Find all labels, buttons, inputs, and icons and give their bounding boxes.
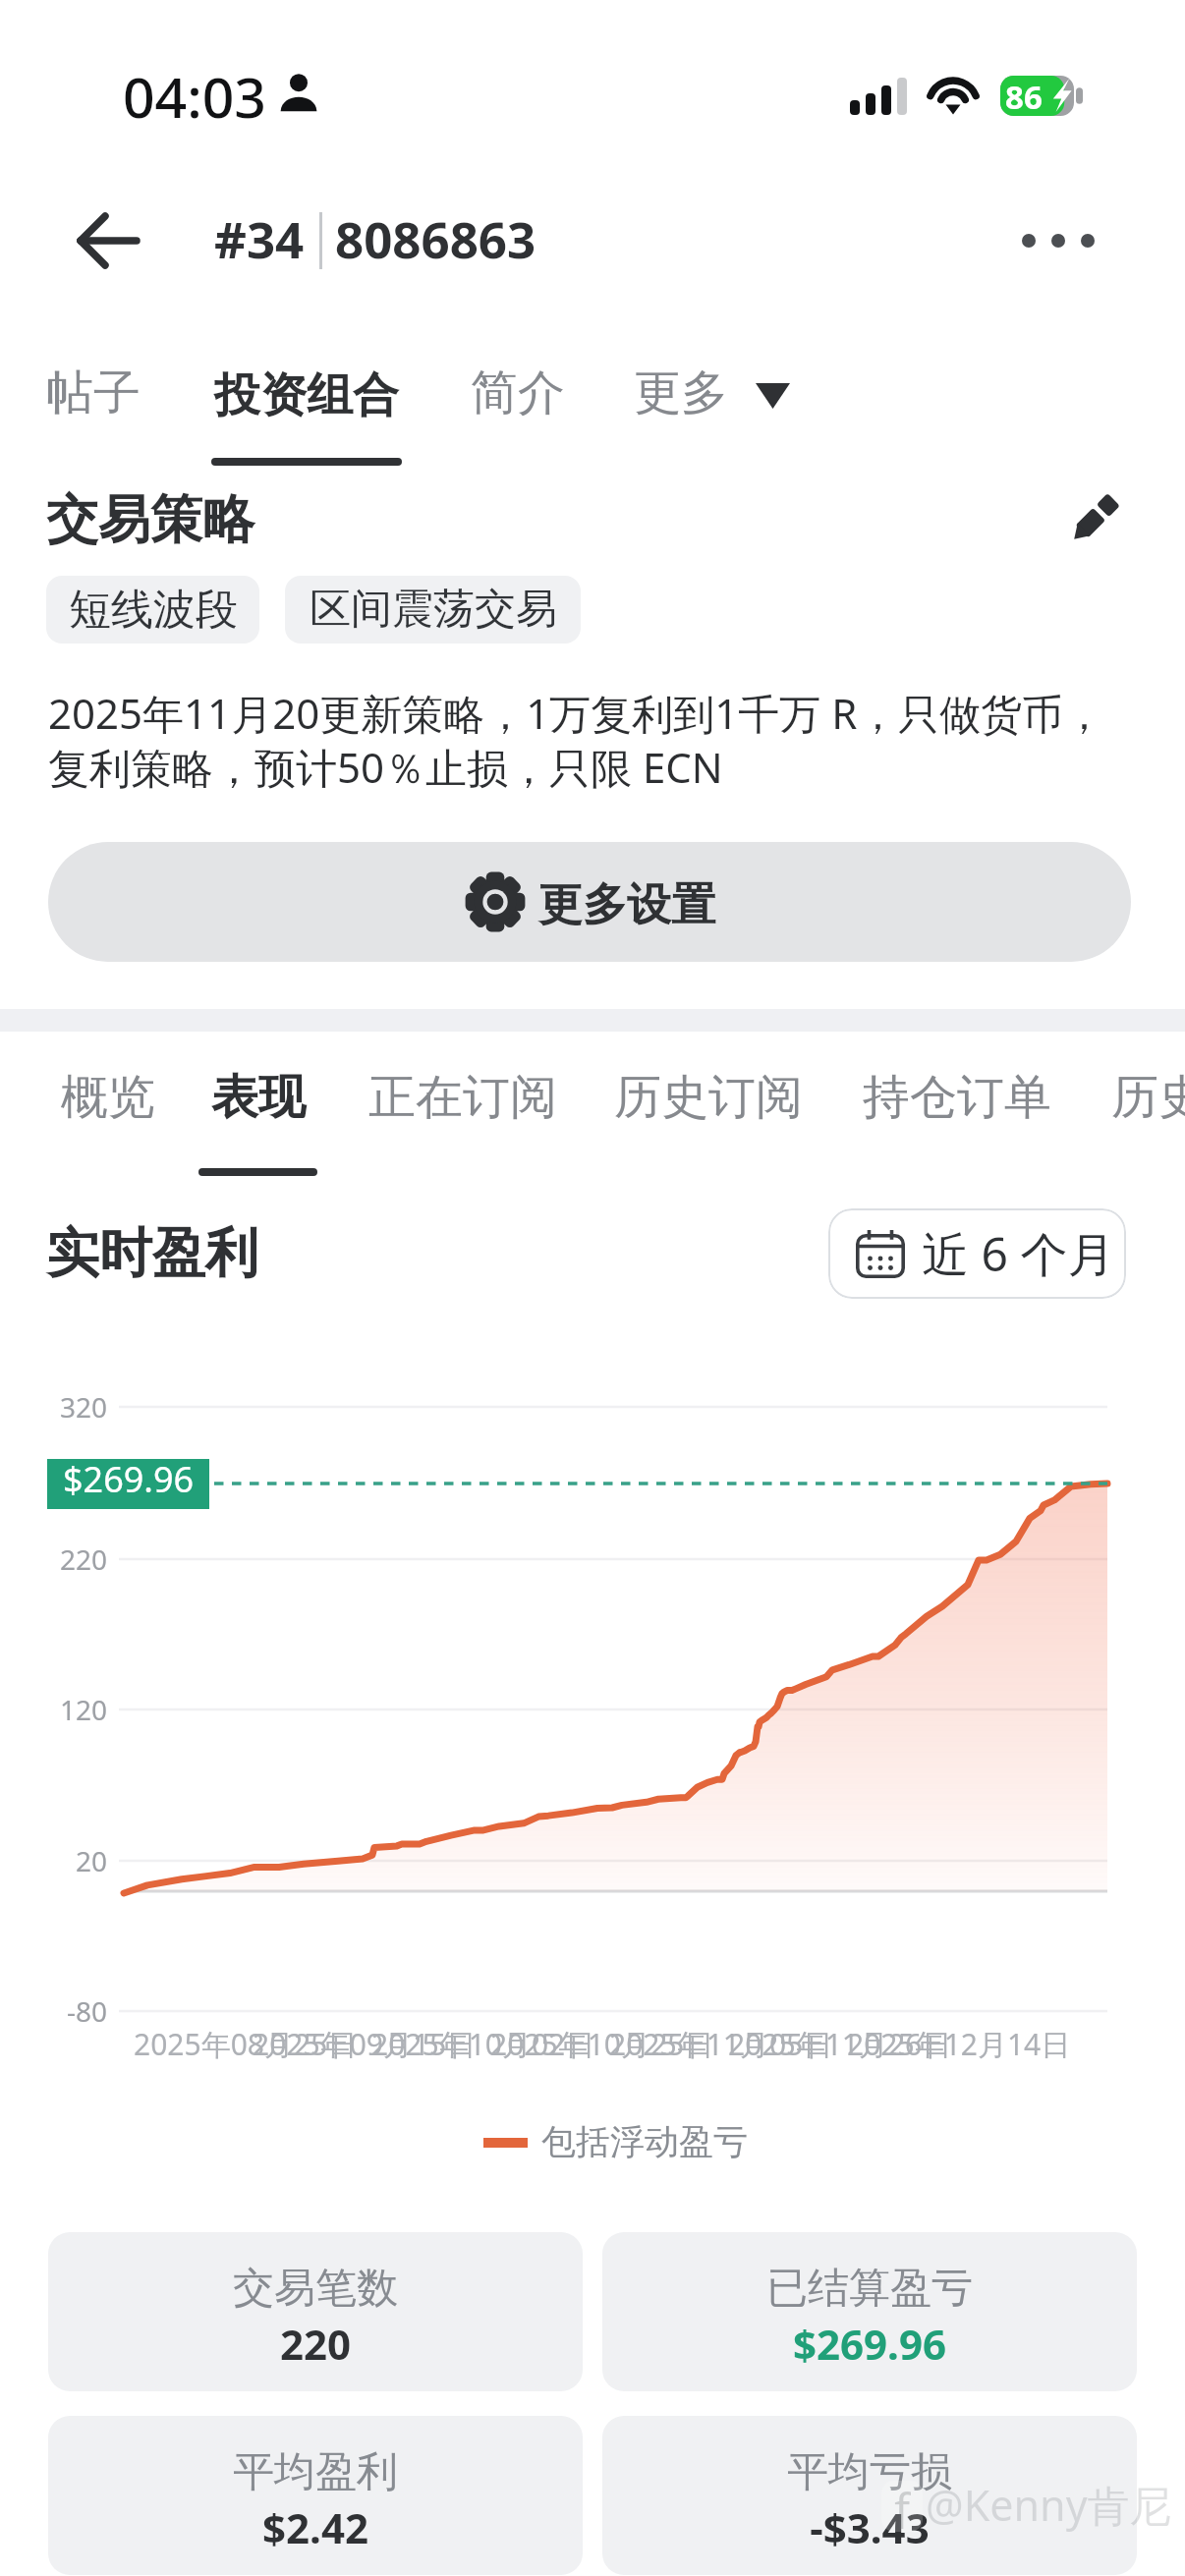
button[interactable]: 简介: [447, 346, 588, 440]
button[interactable]: 短线波段: [46, 576, 259, 644]
button[interactable]: Back: [47, 199, 167, 282]
staticText: 交易笔数: [48, 2263, 583, 2315]
staticText: #34: [214, 204, 305, 272]
button[interactable]: 更多: [634, 346, 790, 440]
staticText: 8086863: [335, 204, 536, 272]
button[interactable]: 正在订阅: [352, 1063, 574, 1183]
staticText: 历史订阅: [614, 1068, 803, 1127]
button[interactable]: 帖子: [20, 346, 167, 440]
staticText: 220: [48, 2316, 583, 2372]
staticText: 实时盈利: [46, 1220, 258, 1287]
staticText: 短线波段: [69, 584, 238, 637]
staticText: 帖子: [46, 364, 141, 422]
button[interactable]: 概览: [44, 1063, 172, 1183]
staticText: 220: [60, 1540, 108, 1578]
button[interactable]: 表现: [194, 1063, 321, 1183]
staticText: 04:03: [123, 58, 266, 135]
staticText: 持仓订单: [863, 1068, 1051, 1127]
staticText: $2.42: [48, 2499, 583, 2555]
staticText: 复利策略，预计50％止损，只限 ECN: [48, 739, 723, 795]
staticText: 平均亏损: [602, 2446, 1137, 2498]
button[interactable]: 更多设置: [48, 842, 1131, 962]
staticText: 2025年08月25日: [134, 2024, 358, 2064]
staticText: 平均盈利: [48, 2446, 583, 2498]
button[interactable]: More options: [994, 199, 1122, 282]
staticText: $269.96: [602, 2316, 1137, 2372]
staticText: 20: [76, 1842, 108, 1879]
staticText: 历史: [1111, 1068, 1185, 1127]
staticText: 包括浮动盈亏: [541, 2120, 748, 2163]
staticText: 2025年10月02日: [371, 2024, 595, 2064]
button[interactable]: 区间震荡交易: [285, 576, 581, 644]
staticText: 投资组合: [214, 366, 399, 424]
staticText: 正在订阅: [368, 1068, 557, 1127]
staticText: 2025年10月25日: [490, 2024, 714, 2064]
staticText: 320: [60, 1388, 108, 1426]
staticText: 简介: [471, 364, 565, 422]
staticText: 2025年12月14日: [847, 2024, 1071, 2064]
button[interactable]: 平均盈利: [48, 2416, 583, 2575]
button[interactable]: 已结算盈亏: [602, 2232, 1137, 2391]
staticText: 概览: [61, 1068, 155, 1127]
staticText: 区间震荡交易: [310, 584, 557, 636]
button[interactable]: Edit: [1040, 475, 1148, 565]
staticText: $269.96: [63, 1455, 195, 1503]
staticText: 表现: [211, 1068, 306, 1127]
staticText: @Kenny肯尼: [926, 2476, 1172, 2534]
staticText: -80: [67, 1992, 108, 2030]
staticText: 近 6 个月: [922, 1221, 1115, 1286]
staticText: 2025年11月20更新策略，1万复利到1千万 R，只做货币，: [48, 685, 1105, 741]
button[interactable]: 投资组合: [191, 346, 423, 474]
button[interactable]: 历史: [1095, 1063, 1185, 1183]
button[interactable]: 平均亏损: [602, 2416, 1137, 2575]
staticText: 2025年11月05日: [609, 2024, 833, 2064]
staticText: 120: [60, 1691, 108, 1728]
button[interactable]: 近 6 个月: [828, 1208, 1126, 1299]
staticText: 2025年09月15日: [253, 2024, 477, 2064]
staticText: 更多设置: [538, 877, 715, 933]
staticText: 更多: [634, 364, 728, 422]
staticText: 交易策略: [46, 487, 254, 553]
button[interactable]: 历史订阅: [597, 1063, 819, 1183]
staticText: -$3.43: [602, 2499, 1137, 2555]
button[interactable]: 持仓订单: [846, 1063, 1068, 1183]
staticText: 已结算盈亏: [602, 2263, 1137, 2315]
staticText: ƒ: [891, 2478, 911, 2529]
staticText: 86: [1005, 75, 1043, 119]
staticText: 2025年11月26日: [728, 2024, 952, 2064]
button[interactable]: 交易笔数: [48, 2232, 583, 2391]
